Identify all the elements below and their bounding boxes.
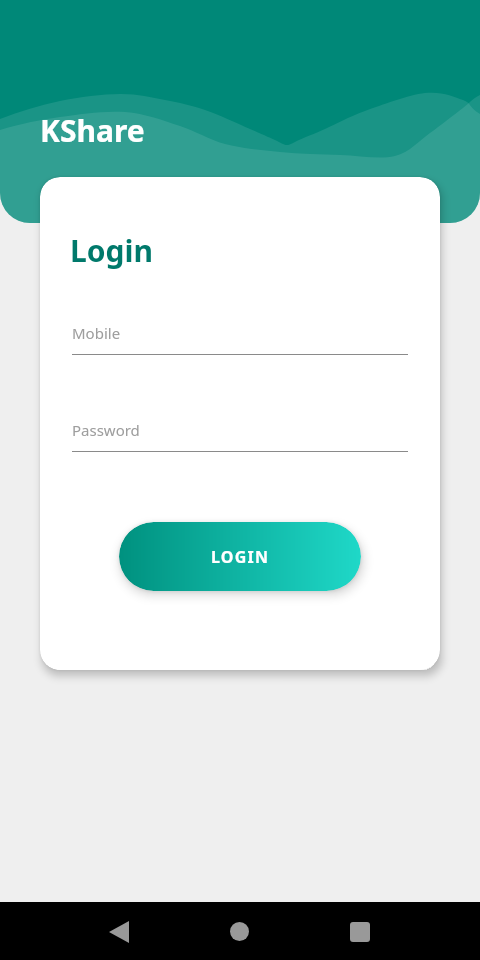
button[interactable]: Recent apps <box>335 907 384 956</box>
button[interactable]: LOGIN <box>119 522 361 591</box>
staticText: Login <box>70 230 153 271</box>
staticText: Mobile <box>72 323 121 343</box>
staticText: Password <box>72 420 140 440</box>
button[interactable]: Home <box>215 907 264 956</box>
staticText: KShare <box>40 110 145 151</box>
button[interactable]: Back <box>94 907 143 956</box>
staticText: LOGIN <box>211 546 270 568</box>
